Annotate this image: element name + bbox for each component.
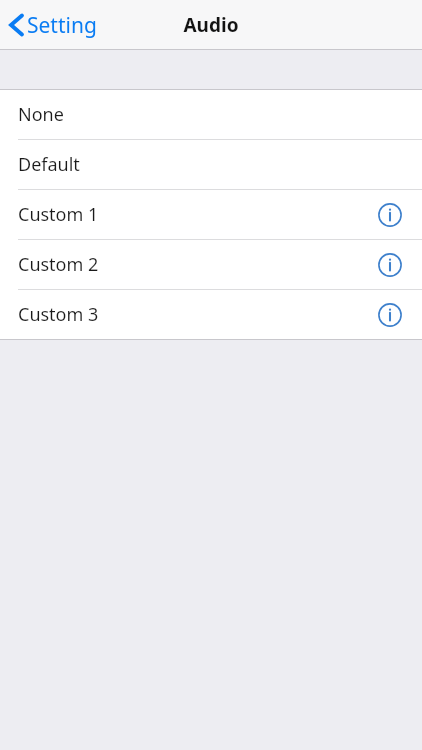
button[interactable]: More info	[377, 302, 403, 328]
staticText: Custom 1	[18, 202, 99, 227]
staticText: Setting	[27, 11, 97, 40]
button[interactable]: None	[0, 90, 422, 139]
staticText: Audio	[183, 12, 239, 38]
button[interactable]: Custom 3	[0, 290, 422, 339]
button[interactable]: Custom 2	[0, 240, 422, 289]
staticText: Default	[18, 152, 80, 177]
button[interactable]: Setting	[0, 0, 107, 50]
staticText: None	[18, 102, 64, 127]
staticText: Custom 2	[18, 252, 99, 277]
button[interactable]: Custom 1	[0, 190, 422, 239]
staticText: Custom 3	[18, 302, 99, 327]
button[interactable]: Default	[0, 140, 422, 189]
button[interactable]: More info	[377, 202, 403, 228]
button[interactable]: More info	[377, 252, 403, 278]
